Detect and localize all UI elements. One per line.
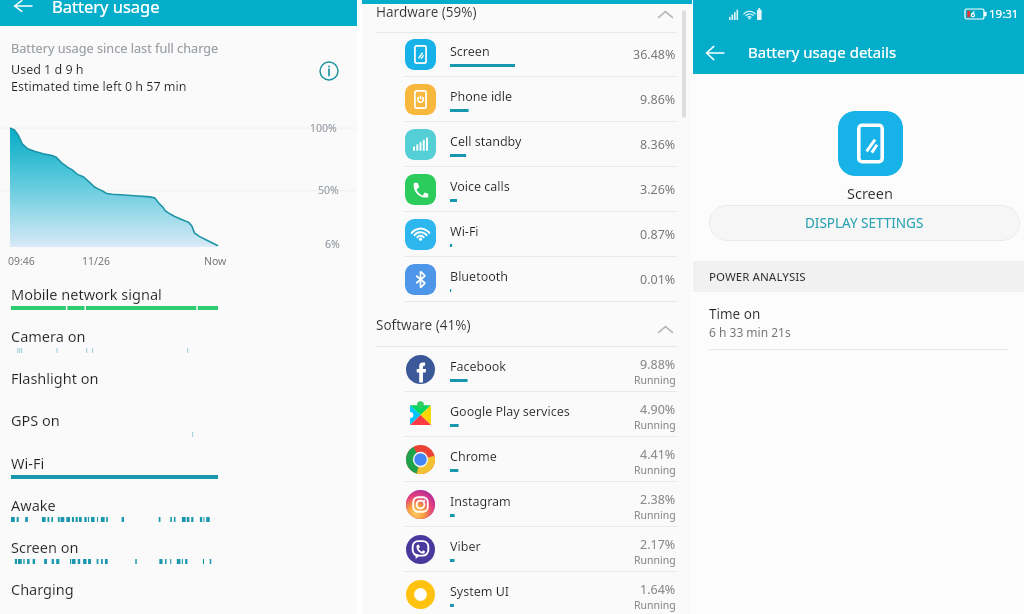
staticText: Used 1 d 9 h xyxy=(11,61,84,78)
button[interactable]: Back xyxy=(3,0,43,12)
button[interactable]: Screen xyxy=(362,32,692,77)
staticText: POWER ANALYSIS xyxy=(709,269,806,285)
staticText: Screen xyxy=(847,183,893,203)
staticText: Software (41%) xyxy=(376,316,471,334)
staticText: Camera on xyxy=(11,326,86,346)
staticText: 4.41% xyxy=(640,446,676,463)
staticText: DISPLAY SETTINGS xyxy=(805,214,924,232)
staticText: Wi-Fi xyxy=(11,453,45,473)
staticText: Running xyxy=(634,553,676,567)
staticText: Screen on xyxy=(11,537,79,557)
staticText: System UI xyxy=(450,583,510,600)
button[interactable]: Chrome xyxy=(362,437,692,482)
staticText: Hardware (59%) xyxy=(376,3,477,21)
button[interactable]: Google Play services xyxy=(362,392,692,437)
staticText: 9.88% xyxy=(640,356,676,373)
staticText: GPS on xyxy=(11,410,60,430)
staticText: 1.64% xyxy=(640,581,676,598)
button[interactable]: Software (41%) xyxy=(362,302,692,347)
staticText: Running xyxy=(634,463,676,477)
button[interactable]: Cell standby xyxy=(362,122,692,167)
staticText: Chrome xyxy=(450,448,497,465)
button[interactable]: Phone idle xyxy=(362,77,692,122)
button[interactable]: Awake xyxy=(0,494,357,536)
button[interactable]: Instagram xyxy=(362,482,692,527)
staticText: 100% xyxy=(310,121,337,135)
button[interactable]: Hardware (59%) xyxy=(362,4,692,33)
button[interactable]: Collapse xyxy=(649,0,681,29)
staticText: Running xyxy=(634,373,676,387)
staticText: Now xyxy=(204,254,227,268)
staticText: 19:31 xyxy=(989,6,1019,22)
staticText: 09:46 xyxy=(8,254,35,268)
button[interactable]: Screen on xyxy=(0,536,357,578)
button[interactable]: Charging xyxy=(0,578,357,614)
staticText: Charging xyxy=(11,579,74,599)
button[interactable]: Wi-Fi xyxy=(362,212,692,257)
staticText: 4.90% xyxy=(640,401,676,418)
staticText: Time on xyxy=(709,305,761,323)
staticText: Running xyxy=(634,508,676,522)
staticText: Instagram xyxy=(450,493,511,510)
button[interactable]: DISPLAY SETTINGS xyxy=(709,205,1020,241)
button[interactable]: Flashlight on xyxy=(0,367,357,409)
staticText: 6% xyxy=(325,237,340,251)
staticText: Flashlight on xyxy=(11,368,99,388)
button[interactable]: Collapse xyxy=(649,313,681,345)
button[interactable]: Bluetooth xyxy=(362,257,692,302)
button[interactable]: Info xyxy=(312,54,346,88)
staticText: Google Play services xyxy=(450,403,570,420)
staticText: 2.38% xyxy=(640,491,676,508)
staticText: Voice calls xyxy=(450,178,510,195)
staticText: 50% xyxy=(318,183,339,197)
staticText: Viber xyxy=(450,538,481,555)
staticText: Battery usage xyxy=(52,0,160,17)
staticText: Battery usage since last full charge xyxy=(11,39,219,56)
button[interactable]: Wi-Fi xyxy=(0,452,357,494)
staticText: 8.36% xyxy=(640,136,676,153)
staticText: Running xyxy=(634,598,676,612)
staticText: 3.26% xyxy=(640,181,676,198)
staticText: Cell standby xyxy=(450,133,522,150)
staticText: 36.48% xyxy=(633,46,676,63)
button[interactable]: System UI xyxy=(362,572,692,614)
staticText: Phone idle xyxy=(450,88,513,105)
button[interactable]: Viber xyxy=(362,527,692,572)
staticText: 11/26 xyxy=(82,254,110,268)
button[interactable]: Back xyxy=(695,33,735,73)
staticText: Facebook xyxy=(450,358,507,375)
button[interactable]: Voice calls xyxy=(362,167,692,212)
staticText: Screen xyxy=(450,43,490,60)
staticText: Mobile network signal xyxy=(11,284,162,304)
staticText: Battery usage details xyxy=(748,42,897,62)
staticText: 0.01% xyxy=(640,271,676,288)
staticText: Wi-Fi xyxy=(450,223,479,240)
button[interactable]: Camera on xyxy=(0,325,357,367)
staticText: 6 h 33 min 21s xyxy=(709,324,791,340)
button[interactable]: Time on xyxy=(693,292,1024,350)
staticText: 0.87% xyxy=(640,226,676,243)
staticText: Estimated time left 0 h 57 min xyxy=(11,78,187,95)
staticText: Bluetooth xyxy=(450,268,509,285)
staticText: Running xyxy=(634,418,676,432)
button[interactable]: Mobile network signal xyxy=(0,283,357,325)
staticText: 9.86% xyxy=(640,91,676,108)
staticText: Awake xyxy=(11,495,56,515)
button[interactable]: Facebook xyxy=(362,347,692,392)
button[interactable]: GPS on xyxy=(0,409,357,451)
staticText: 2.17% xyxy=(640,536,676,553)
